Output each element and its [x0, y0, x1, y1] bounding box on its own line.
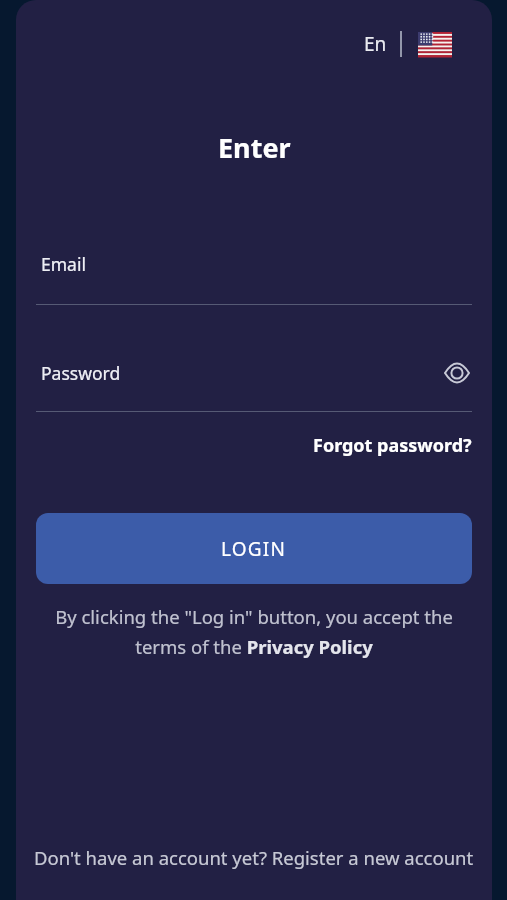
staticText: Password [41, 361, 121, 385]
button[interactable]: LOGIN [36, 513, 472, 584]
button[interactable]: Email [36, 252, 472, 276]
staticText: En [364, 31, 387, 57]
button[interactable]: Password [36, 361, 472, 385]
staticText: Enter [218, 129, 291, 166]
button[interactable] [444, 363, 470, 383]
button[interactable]: En [364, 31, 452, 57]
button[interactable]: Don't have an account yet? Register a ne… [34, 845, 474, 870]
staticText: LOGIN [221, 536, 287, 562]
staticText: Don't have an account yet? Register a ne… [34, 845, 474, 870]
staticText: Forgot password? [313, 433, 472, 458]
button[interactable]: Forgot password? [313, 433, 472, 458]
staticText: Email [41, 252, 86, 276]
staticText: By clicking the "Log in" button, you acc… [36, 604, 472, 659]
